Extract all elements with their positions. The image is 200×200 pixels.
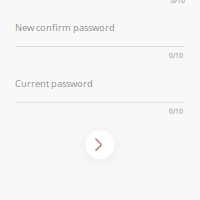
staticText: New confirm password <box>15 21 115 34</box>
staticText: 0/10 <box>169 51 183 60</box>
staticText: Current password <box>15 77 93 90</box>
staticText: 0/10 <box>171 0 185 5</box>
button[interactable]: Continue <box>81 126 119 164</box>
staticText: 0/10 <box>169 107 183 116</box>
